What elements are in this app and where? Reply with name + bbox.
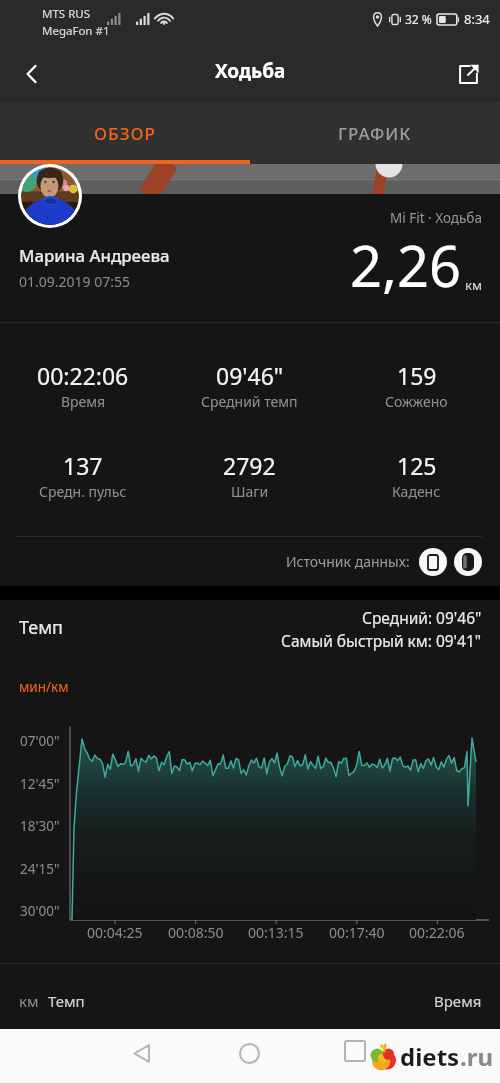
staticText: 09'46" bbox=[216, 360, 284, 391]
button[interactable]: ОБЗОР bbox=[0, 102, 250, 164]
button[interactable]: Темп bbox=[48, 991, 85, 1011]
staticText: мин/км bbox=[19, 678, 69, 696]
staticText: MTS RUS bbox=[42, 6, 91, 22]
staticText: 00:17:40 bbox=[329, 923, 385, 942]
staticText: diets bbox=[400, 1040, 460, 1073]
staticText: км bbox=[465, 276, 482, 294]
button[interactable]: Phone data source bbox=[419, 548, 447, 576]
button[interactable]: Время bbox=[434, 991, 482, 1011]
button[interactable]: ГРАФИК bbox=[250, 102, 500, 164]
staticText: 24'15" bbox=[20, 860, 60, 878]
staticText: Темп bbox=[48, 991, 85, 1011]
button[interactable]: Profile photo bbox=[21, 167, 79, 225]
staticText: .ru bbox=[460, 1040, 494, 1073]
staticText: 159 bbox=[397, 360, 437, 391]
staticText: Средн. пульс bbox=[39, 482, 127, 501]
button[interactable]: Band data source bbox=[454, 548, 482, 576]
staticText: 00:04:25 bbox=[87, 923, 143, 942]
staticText: 00:08:50 bbox=[168, 923, 224, 942]
staticText: ГРАФИК bbox=[338, 122, 412, 145]
staticText: Время bbox=[61, 392, 106, 411]
staticText: 30'00" bbox=[20, 902, 60, 920]
staticText: 137 bbox=[63, 450, 103, 481]
button[interactable]: Home bbox=[226, 1030, 272, 1076]
staticText: Источник данных: bbox=[286, 552, 410, 571]
staticText: MegaFon #1 bbox=[42, 23, 110, 39]
staticText: км bbox=[19, 991, 39, 1011]
staticText: Сожжено bbox=[385, 392, 448, 411]
button[interactable]: Share bbox=[444, 50, 492, 98]
staticText: 00:22:06 bbox=[37, 360, 129, 391]
staticText: Марина Андреева bbox=[19, 244, 170, 267]
staticText: Mi Fit · Ходьба bbox=[390, 209, 482, 227]
staticText: 18'30" bbox=[20, 817, 60, 835]
staticText: 07'00" bbox=[20, 732, 60, 750]
staticText: 125 bbox=[397, 450, 437, 481]
staticText: Каденс bbox=[392, 482, 441, 501]
button[interactable]: км bbox=[19, 991, 39, 1011]
staticText: 32 % bbox=[405, 11, 432, 27]
staticText: Шаги bbox=[231, 482, 269, 501]
staticText: 01.09.2019 07:55 bbox=[19, 272, 130, 291]
button[interactable]: Back bbox=[119, 1030, 165, 1076]
staticText: 2792 bbox=[223, 450, 276, 481]
staticText: Самый быстрый км: 09'41" bbox=[281, 630, 482, 651]
staticText: 00:22:06 bbox=[409, 923, 465, 942]
button[interactable]: Back bbox=[8, 50, 56, 98]
staticText: Время bbox=[434, 991, 482, 1011]
staticText: Средний: 09'46" bbox=[362, 607, 482, 628]
staticText: Ходьба bbox=[215, 58, 286, 84]
staticText: Средний темп bbox=[201, 392, 298, 411]
staticText: ОБЗОР bbox=[94, 122, 156, 145]
staticText: 12'45" bbox=[20, 775, 60, 793]
staticText: 2,26 bbox=[350, 227, 462, 303]
staticText: 8:34 bbox=[464, 10, 490, 28]
staticText: 00:13:15 bbox=[248, 923, 304, 942]
staticText: Темп bbox=[19, 615, 63, 640]
button[interactable]: Recent apps bbox=[334, 1030, 376, 1072]
